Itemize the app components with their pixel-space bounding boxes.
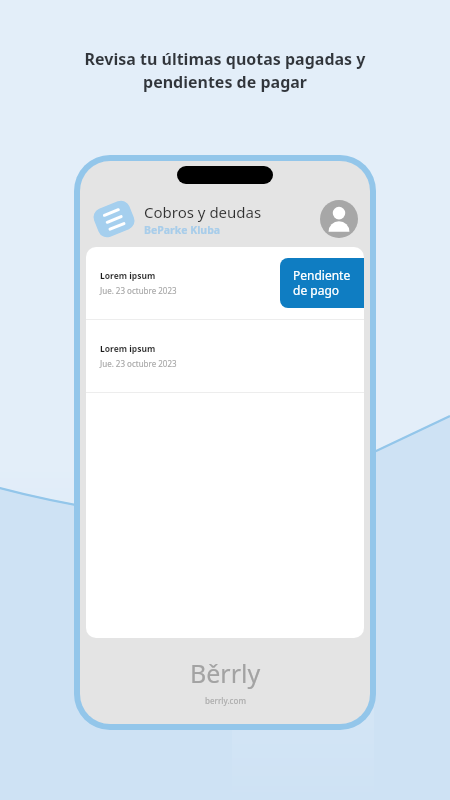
staticText: Běrrly [190,656,261,690]
staticText: Jue. 23 octubre 2023 [100,285,177,296]
staticText: Lorem ipsum [100,270,156,282]
staticText: berrly.com [205,695,246,706]
button[interactable]: Pendiente de pago [280,258,364,308]
staticText: BeParke Kluba [144,223,221,237]
staticText: Cobros y deudas [144,202,262,222]
staticText: Pendiente de pago [293,267,351,298]
button[interactable]: Profile [320,200,358,238]
button[interactable]: Lorem ipsum [86,320,364,392]
staticText: Lorem ipsum [100,343,156,355]
staticText: Revisa tu últimas quotas pagadas y pendi… [24,48,426,93]
button[interactable]: Menu [90,195,138,243]
staticText: Jue. 23 octubre 2023 [100,358,177,369]
button[interactable]: Lorem ipsum [86,247,364,319]
